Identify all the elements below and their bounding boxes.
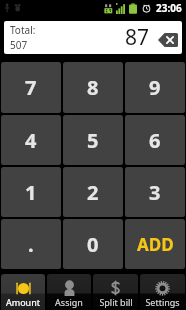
button[interactable]: 2	[63, 167, 123, 217]
staticText: 5	[87, 127, 99, 154]
button[interactable]: 3	[125, 167, 185, 217]
button[interactable]: 7	[1, 62, 61, 113]
staticText: 7	[25, 74, 37, 101]
staticText: Split bill	[99, 296, 133, 308]
button[interactable]: Amount	[1, 274, 45, 310]
button[interactable]: Settings	[140, 274, 185, 310]
button[interactable]: .	[1, 219, 61, 269]
staticText: 1	[25, 179, 37, 206]
staticText: 87	[125, 23, 150, 52]
staticText: 9	[149, 74, 161, 101]
button[interactable]: Split bill	[93, 274, 138, 310]
button[interactable]: ADD	[125, 219, 185, 269]
button[interactable]: 0	[63, 219, 123, 269]
staticText: 3	[149, 179, 161, 206]
staticText: 4	[25, 127, 37, 154]
button[interactable]: Delete	[158, 33, 178, 47]
staticText: 6	[149, 127, 161, 154]
button[interactable]: 9	[125, 62, 185, 113]
button[interactable]: 4	[1, 115, 61, 165]
staticText: Total:	[10, 23, 36, 37]
button[interactable]: Assign	[47, 274, 91, 310]
staticText: 507	[10, 38, 28, 52]
button[interactable]: 6	[125, 115, 185, 165]
button[interactable]: 5	[63, 115, 123, 165]
staticText: ADD	[137, 233, 174, 256]
staticText: Amount	[6, 296, 40, 308]
staticText: Settings	[145, 296, 180, 308]
staticText: 2	[87, 179, 99, 206]
staticText: Assign	[55, 296, 83, 308]
button[interactable]: 1	[1, 167, 61, 217]
staticText: 23:06	[156, 1, 182, 15]
button[interactable]: 8	[63, 62, 123, 113]
staticText: 0	[87, 231, 99, 258]
staticText: .	[28, 231, 34, 258]
staticText: 8	[87, 74, 99, 101]
